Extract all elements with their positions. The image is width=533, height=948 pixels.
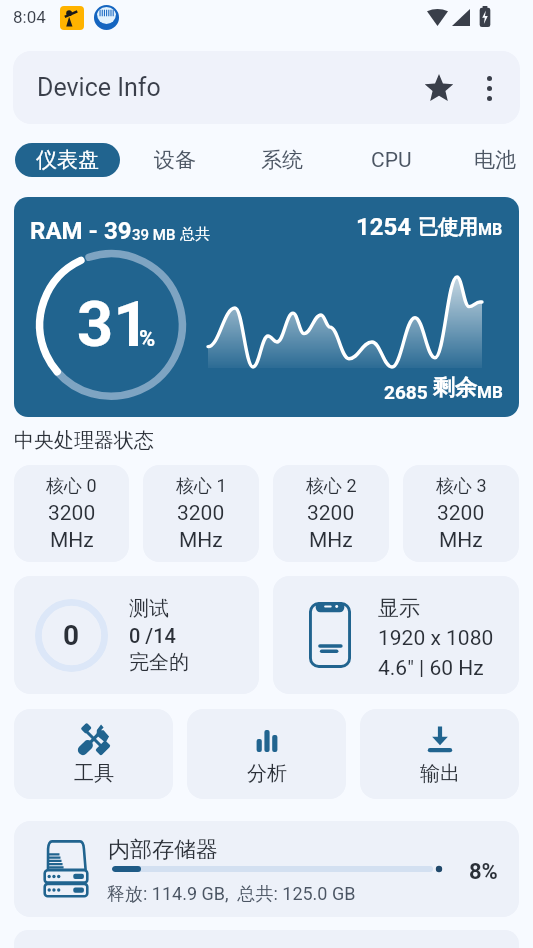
staticText: 完全的 [129, 650, 189, 675]
staticText: 电池 [474, 147, 516, 173]
button[interactable]: 0 [14, 576, 259, 694]
staticText: 4.6" | 60 Hz [378, 656, 484, 681]
staticText: 核心 3 [436, 475, 487, 498]
button[interactable]: 核心 2 [273, 465, 389, 562]
staticText: 内部存储器 [108, 836, 218, 864]
staticText: 显示 [378, 595, 420, 621]
staticText: CPU [371, 148, 412, 173]
staticText: MB [477, 382, 503, 402]
button[interactable]: 输出 [360, 709, 519, 799]
staticText: 3200 [437, 501, 485, 526]
staticText: 2685 [384, 381, 433, 403]
staticText: 31 [77, 288, 150, 362]
button[interactable]: More options [465, 64, 513, 112]
staticText: Device Info [37, 73, 161, 102]
staticText: 仪表盘 [36, 147, 99, 173]
staticText: 设备 [154, 147, 196, 173]
staticText: 0 /14 [129, 624, 176, 647]
staticText: 1254 [356, 213, 418, 241]
staticText: 已使用 [418, 215, 478, 240]
staticText: % [139, 326, 156, 352]
button[interactable]: Favorite [413, 62, 465, 114]
button[interactable]: 核心 0 [14, 465, 129, 562]
staticText: 8% [469, 859, 498, 885]
staticText: 39 MB [132, 226, 180, 244]
staticText: 系统 [261, 147, 303, 173]
staticText: 8:04 [13, 7, 46, 27]
staticText: 3200 [48, 501, 96, 526]
staticText: 核心 1 [176, 475, 227, 498]
staticText: 核心 2 [306, 475, 357, 498]
staticText: 剩余 [433, 374, 477, 402]
button[interactable]: 工具 [14, 709, 173, 799]
button[interactable]: 内部存储器 [14, 821, 519, 917]
staticText: 3200 [307, 501, 355, 526]
staticText: MB [478, 220, 503, 239]
staticText: 分析 [247, 761, 287, 786]
button[interactable]: 电池 [450, 143, 533, 177]
button[interactable]: CPU [346, 143, 436, 177]
button[interactable]: 系统 [237, 143, 327, 177]
staticText: 核心 0 [46, 475, 97, 498]
button[interactable]: 显示 [273, 576, 519, 694]
button[interactable]: 分析 [187, 709, 346, 799]
staticText: MHz [179, 528, 223, 553]
staticText: 0 [63, 619, 80, 652]
staticText: 3200 [177, 501, 225, 526]
staticText: 输出 [420, 761, 460, 786]
button[interactable]: 核心 3 [403, 465, 519, 562]
staticText: 工具 [74, 761, 114, 786]
staticText: MHz [439, 528, 483, 553]
staticText: MHz [309, 528, 353, 553]
staticText: 总共 [180, 225, 210, 244]
button[interactable]: RAM - 39 [14, 197, 519, 417]
staticText: MHz [50, 528, 94, 553]
staticText: 中央处理器状态 [14, 428, 154, 453]
staticText: 1920 x 1080 [378, 626, 494, 651]
button[interactable]: 设备 [130, 143, 220, 177]
button[interactable]: 仪表盘 [15, 143, 120, 177]
staticText: 测试 [129, 596, 169, 621]
button[interactable]: 核心 1 [143, 465, 259, 562]
staticText: 释放: 114.9 GB, 总共: 125.0 GB [107, 883, 356, 906]
staticText: RAM - 39 [30, 217, 132, 245]
